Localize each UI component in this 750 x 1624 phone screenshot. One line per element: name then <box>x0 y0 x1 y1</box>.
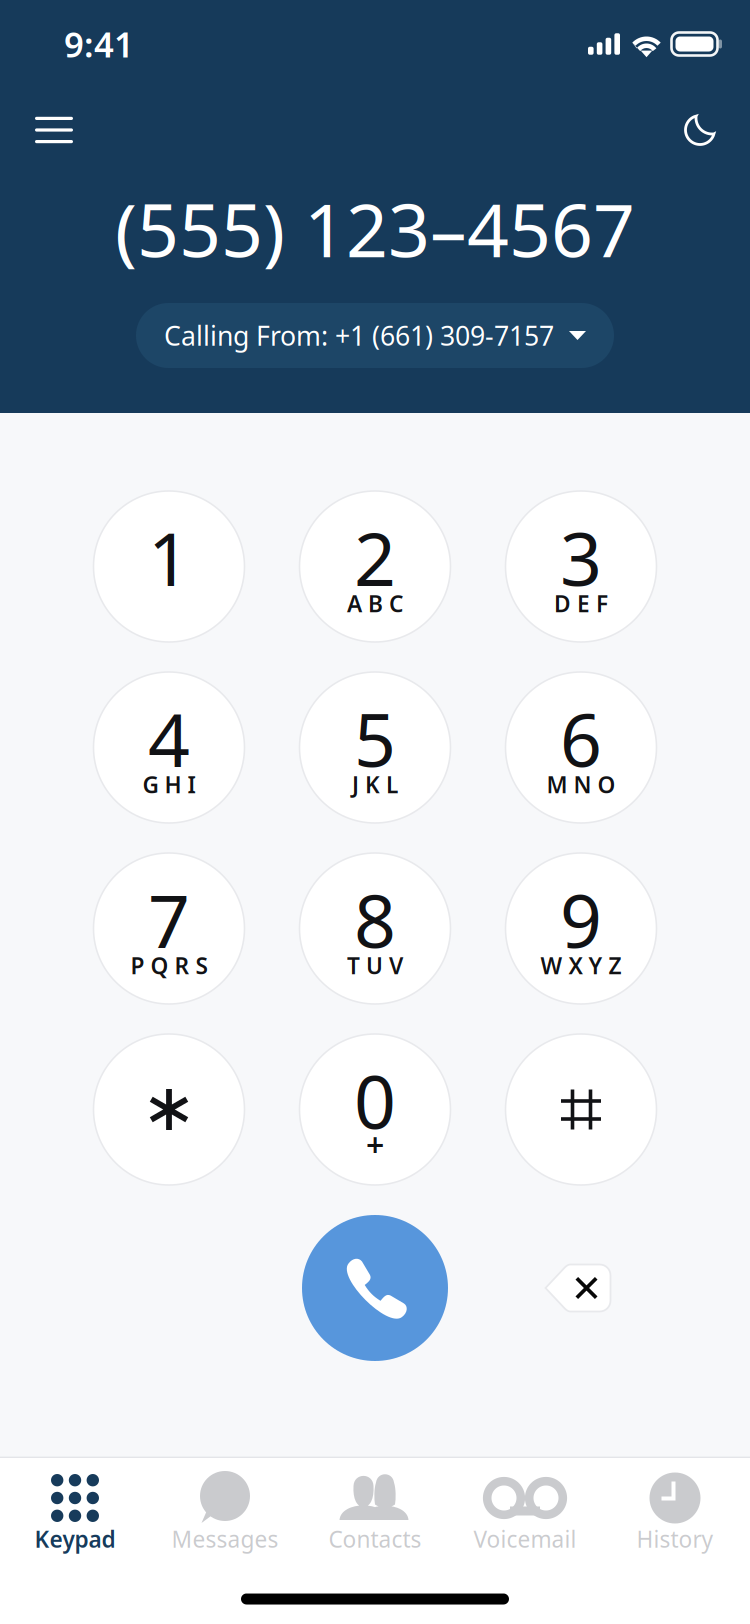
staticText: Calling From: +1 (661) 309-7157 <box>164 318 554 353</box>
button[interactable]: 2 <box>299 491 450 642</box>
staticText: Voicemail <box>473 1524 576 1554</box>
button[interactable]: Contacts <box>300 1458 450 1570</box>
staticText: 1 <box>148 509 190 606</box>
button[interactable]: 1 <box>93 491 244 642</box>
button[interactable]: Keypad <box>0 1458 150 1570</box>
staticText: 3 <box>560 509 602 606</box>
button[interactable]: 5 <box>299 672 450 823</box>
staticText: (555) 123–4567 <box>115 180 635 277</box>
button[interactable]: Pound <box>505 1034 656 1185</box>
button[interactable]: 6 <box>505 672 656 823</box>
staticText: J K L <box>352 769 398 799</box>
staticText: 5 <box>354 690 396 787</box>
button[interactable]: 9 <box>505 853 656 1004</box>
button[interactable]: History <box>600 1458 750 1570</box>
button[interactable]: Call <box>302 1215 448 1361</box>
staticText: 0 <box>354 1052 396 1149</box>
staticText: A B C <box>347 588 403 618</box>
staticText: 6 <box>560 690 602 787</box>
staticText: Keypad <box>34 1524 115 1554</box>
button[interactable]: Menu <box>35 102 109 158</box>
staticText: 2 <box>354 509 396 606</box>
staticText: D E F <box>554 588 608 618</box>
staticText: P Q R S <box>130 950 207 980</box>
staticText: M N O <box>546 769 615 799</box>
staticText: + <box>366 1123 384 1166</box>
staticText: 7 <box>148 871 190 968</box>
staticText: 9 <box>560 871 602 968</box>
button[interactable]: 0 <box>299 1034 450 1185</box>
staticText: 9:41 <box>64 21 134 67</box>
staticText: History <box>636 1524 713 1554</box>
staticText: Contacts <box>328 1524 421 1554</box>
staticText: 4 <box>148 690 190 787</box>
staticText: W X Y Z <box>540 950 621 980</box>
button[interactable]: Voicemail <box>450 1458 600 1570</box>
button[interactable]: 7 <box>93 853 244 1004</box>
button[interactable]: Messages <box>150 1458 300 1570</box>
staticText: T U V <box>347 950 403 980</box>
button[interactable]: Calling From: +1 (661) 309-7157 <box>136 303 614 368</box>
button[interactable]: 3 <box>505 491 656 642</box>
button[interactable]: 8 <box>299 853 450 1004</box>
button[interactable]: Backspace <box>533 1256 623 1320</box>
button[interactable]: 4 <box>93 672 244 823</box>
button[interactable]: Dark mode <box>643 102 717 158</box>
staticText: 8 <box>354 871 396 968</box>
staticText: Messages <box>171 1524 278 1554</box>
staticText: G H I <box>142 769 195 799</box>
button[interactable]: Star <box>93 1034 244 1185</box>
